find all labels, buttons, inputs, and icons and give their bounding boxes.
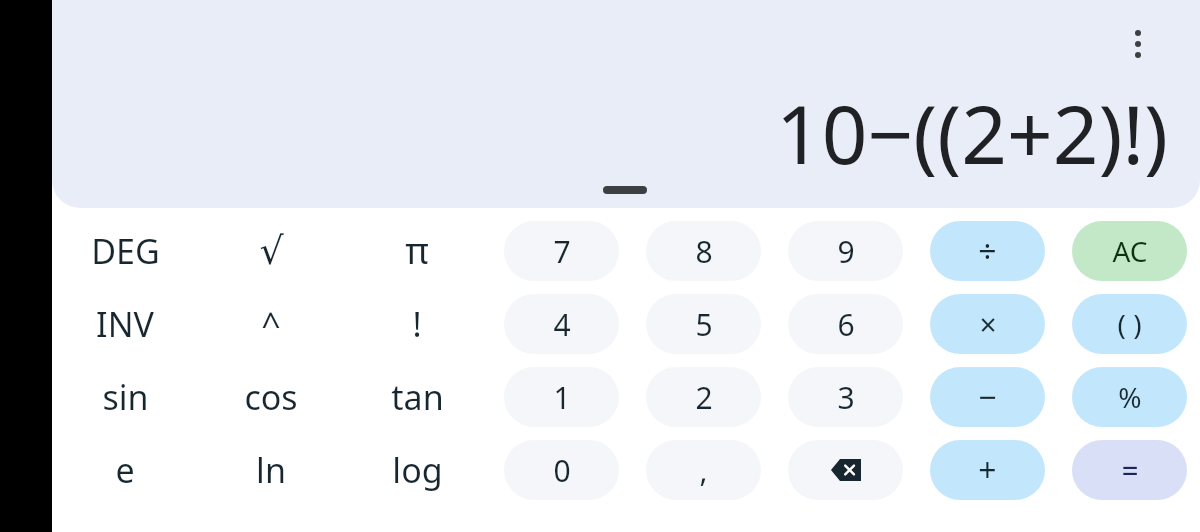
staticText: cos bbox=[244, 374, 298, 420]
button[interactable]: 8 bbox=[646, 221, 761, 281]
button[interactable]: DEG bbox=[52, 214, 198, 287]
button[interactable]: tan bbox=[344, 360, 490, 433]
staticText: 8 bbox=[695, 231, 713, 272]
staticText: log bbox=[392, 447, 443, 493]
button[interactable]: ln bbox=[198, 433, 344, 506]
button[interactable]: 9 bbox=[788, 221, 903, 281]
staticText: = bbox=[1121, 450, 1139, 491]
button[interactable]: log bbox=[344, 433, 490, 506]
button[interactable]: e bbox=[52, 433, 198, 506]
staticText: 6 bbox=[837, 304, 855, 345]
button[interactable]: Plus bbox=[930, 440, 1045, 500]
staticText: ln bbox=[256, 447, 286, 493]
staticText: ! bbox=[412, 301, 422, 347]
button[interactable]: ! bbox=[344, 287, 490, 360]
staticText: − bbox=[978, 375, 997, 419]
button[interactable]: Multiply bbox=[930, 294, 1045, 354]
staticText: ( ) bbox=[1117, 305, 1142, 343]
staticText: 1 bbox=[553, 377, 571, 418]
staticText: 4 bbox=[553, 304, 571, 345]
staticText: 10−((2+2)!) bbox=[775, 78, 1168, 187]
button[interactable]: Expand bbox=[603, 186, 647, 194]
button[interactable]: 4 bbox=[504, 294, 619, 354]
staticText: % bbox=[1118, 378, 1142, 416]
staticText: π bbox=[405, 226, 429, 275]
button[interactable]: π bbox=[344, 214, 490, 287]
staticText: tan bbox=[391, 374, 444, 420]
staticText: 7 bbox=[553, 231, 571, 272]
button[interactable]: 0 bbox=[504, 440, 619, 500]
staticText: 9 bbox=[837, 231, 855, 272]
button[interactable]: Parentheses bbox=[1072, 294, 1187, 354]
staticText: ÷ bbox=[978, 229, 997, 273]
staticText: × bbox=[979, 304, 997, 345]
button[interactable]: sin bbox=[52, 360, 198, 433]
button[interactable]: Backspace bbox=[788, 440, 903, 500]
staticText: ^ bbox=[261, 301, 281, 347]
button[interactable]: INV bbox=[52, 287, 198, 360]
button[interactable]: Divide bbox=[930, 221, 1045, 281]
staticText: , bbox=[699, 450, 708, 491]
button[interactable]: 6 bbox=[788, 294, 903, 354]
staticText: DEG bbox=[91, 228, 160, 274]
button[interactable]: 7 bbox=[504, 221, 619, 281]
staticText: e bbox=[115, 447, 135, 493]
button[interactable]: √ bbox=[198, 214, 344, 287]
button[interactable]: 2 bbox=[646, 367, 761, 427]
button[interactable]: Percent bbox=[1072, 367, 1187, 427]
button[interactable]: ^ bbox=[198, 287, 344, 360]
staticText: 2 bbox=[695, 377, 713, 418]
button[interactable]: 3 bbox=[788, 367, 903, 427]
button[interactable]: Equals bbox=[1072, 440, 1187, 500]
button[interactable]: 5 bbox=[646, 294, 761, 354]
button[interactable]: cos bbox=[198, 360, 344, 433]
staticText: + bbox=[978, 448, 997, 492]
button[interactable]: , bbox=[646, 440, 761, 500]
staticText: sin bbox=[102, 374, 149, 420]
staticText: AC bbox=[1112, 232, 1148, 270]
staticText: 3 bbox=[837, 377, 855, 418]
button[interactable]: All clear bbox=[1072, 221, 1187, 281]
staticText: INV bbox=[96, 301, 154, 347]
staticText: √ bbox=[259, 229, 284, 273]
staticText: 0 bbox=[553, 450, 571, 491]
staticText: 5 bbox=[695, 304, 713, 345]
button[interactable]: More options bbox=[1114, 20, 1162, 68]
button[interactable]: Minus bbox=[930, 367, 1045, 427]
button[interactable]: 1 bbox=[504, 367, 619, 427]
